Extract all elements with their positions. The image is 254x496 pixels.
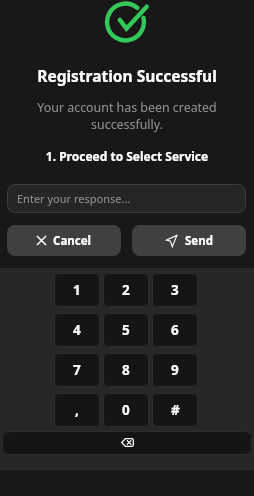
button[interactable]: Send (132, 225, 246, 256)
staticText: # (171, 401, 180, 419)
button[interactable]: Cancel (7, 225, 121, 256)
button[interactable]: Backspace (2, 431, 252, 455)
staticText: 5 (122, 321, 130, 339)
staticText: Registration Successful (0, 65, 254, 86)
button[interactable]: 0 (103, 393, 149, 427)
button[interactable]: 9 (152, 353, 198, 387)
button[interactable]: , (54, 393, 100, 427)
button[interactable]: 3 (152, 273, 198, 307)
staticText: Enter your response... (17, 191, 131, 206)
button[interactable]: 8 (103, 353, 149, 387)
button[interactable]: 7 (54, 353, 100, 387)
button[interactable]: 4 (54, 313, 100, 347)
staticText: 8 (122, 361, 130, 379)
staticText: Cancel (53, 233, 91, 249)
staticText: 2 (122, 281, 130, 299)
button[interactable]: Enter your response... (7, 184, 246, 213)
staticText: 0 (122, 401, 130, 419)
staticText: 6 (171, 321, 179, 339)
staticText: , (75, 401, 79, 419)
button[interactable]: 6 (152, 313, 198, 347)
staticText: 1 (73, 281, 81, 299)
staticText: 9 (171, 361, 179, 379)
staticText: 1. Proceed to Select Service (0, 148, 254, 164)
button[interactable]: 1 (54, 273, 100, 307)
staticText: 3 (171, 281, 179, 299)
button[interactable]: # (152, 393, 198, 427)
button[interactable]: 2 (103, 273, 149, 307)
staticText: Your account has been created successful… (30, 99, 224, 133)
staticText: Send (185, 233, 213, 249)
button[interactable]: 5 (103, 313, 149, 347)
staticText: 4 (73, 321, 81, 339)
staticText: 7 (73, 361, 81, 379)
